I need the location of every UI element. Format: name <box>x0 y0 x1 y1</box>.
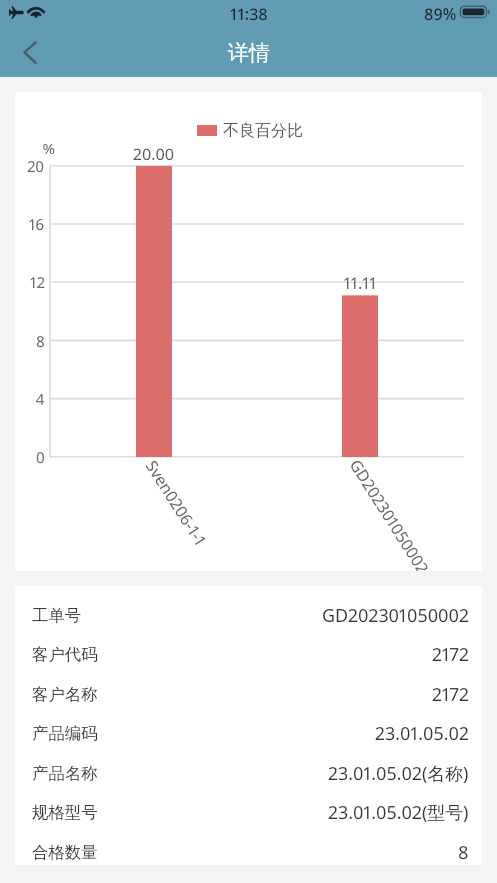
button[interactable]: 产品名称 <box>15 753 482 793</box>
staticText: 合格数量 <box>32 842 98 863</box>
button[interactable]: 规格型号 <box>15 792 482 832</box>
staticText: 23.01.05.02 <box>375 721 469 745</box>
staticText: 规格型号 <box>32 802 98 823</box>
button[interactable]: 工单号 <box>15 595 482 635</box>
staticText: 客户代码 <box>32 644 98 665</box>
staticText: 2172 <box>432 642 469 666</box>
button[interactable]: 客户名称 <box>15 674 482 714</box>
button[interactable]: 产品编码 <box>15 713 482 753</box>
staticText: 产品编码 <box>32 723 98 744</box>
staticText: 23.01.05.02(名称) <box>328 761 469 785</box>
staticText: 客户名称 <box>32 684 98 705</box>
staticText: 89% <box>424 3 457 25</box>
staticText: 8 <box>458 840 469 864</box>
staticText: 11:38 <box>230 3 268 25</box>
button[interactable]: Back <box>0 28 52 77</box>
staticText: 2172 <box>432 682 469 706</box>
staticText: 产品名称 <box>32 763 98 784</box>
staticText: 详情 <box>228 40 270 66</box>
staticText: GD202301050002 <box>322 603 469 627</box>
staticText: 工单号 <box>32 605 82 626</box>
button[interactable]: 合格数量 <box>15 832 482 865</box>
button[interactable]: 客户代码 <box>15 634 482 674</box>
staticText: 23.01.05.02(型号) <box>328 800 469 824</box>
